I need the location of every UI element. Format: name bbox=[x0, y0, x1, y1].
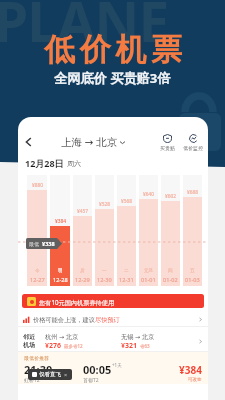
button[interactable]: 仅看直飞 bbox=[28, 369, 72, 380]
staticText: ¥602 bbox=[165, 193, 176, 200]
staticText: ¥688 bbox=[187, 189, 198, 196]
staticText: 仅看直飞 bbox=[39, 371, 61, 378]
staticText: PLANE bbox=[0, 0, 169, 58]
staticText: 买贵赔 bbox=[160, 145, 175, 151]
staticText: ¥880 bbox=[32, 182, 43, 189]
staticText: ¥384 bbox=[179, 363, 202, 377]
staticText: ¥457 bbox=[77, 208, 88, 215]
staticText: 价格可能会上涨，建议 bbox=[33, 316, 95, 324]
staticText: 明 bbox=[58, 268, 63, 274]
staticText: 全网底价 买贵赔3倍 bbox=[54, 69, 171, 87]
staticText: 可改签 bbox=[188, 377, 202, 383]
staticText: 二 bbox=[124, 268, 129, 274]
staticText: 尽快预订 bbox=[95, 316, 120, 324]
button[interactable]: ¥384 bbox=[50, 175, 70, 286]
staticText: × bbox=[64, 371, 68, 378]
button[interactable]: 价格可能会上涨，建议 bbox=[23, 313, 203, 326]
staticText: 21:30 bbox=[24, 362, 53, 377]
staticText: 无锡 → 北京 bbox=[121, 332, 155, 340]
staticText: 四 bbox=[168, 268, 173, 274]
button[interactable]: 上海 → 北京 bbox=[61, 135, 125, 149]
staticText: 01-01 bbox=[141, 276, 156, 284]
staticText: ¥528 bbox=[99, 201, 110, 208]
staticText: 12月28日 bbox=[25, 157, 64, 169]
button[interactable]: ¥457 bbox=[73, 175, 92, 286]
staticText: 首都T2 bbox=[83, 377, 99, 384]
staticText: 您有10元国内机票券待使用 bbox=[39, 298, 115, 306]
staticText: 邻近 bbox=[23, 333, 35, 341]
staticText: ¥384 bbox=[55, 218, 66, 225]
staticText: 省63 bbox=[140, 343, 150, 349]
button[interactable]: ¥880 bbox=[27, 175, 47, 286]
button[interactable]: 最低价推荐 bbox=[18, 352, 208, 384]
staticText: 杭州 → 北京 bbox=[45, 332, 79, 340]
staticText: 12-27 bbox=[30, 276, 45, 284]
button[interactable]: 低价监控 bbox=[183, 134, 203, 151]
staticText: 12-30 bbox=[97, 276, 112, 284]
staticText: +1天 bbox=[112, 362, 122, 368]
staticText: 周六 bbox=[67, 159, 81, 168]
button[interactable]: ¥528 bbox=[95, 175, 114, 286]
button[interactable]: ¥640 bbox=[139, 175, 158, 286]
staticText: 最多省12 bbox=[64, 343, 83, 349]
staticText: 五 bbox=[190, 268, 195, 274]
staticText: 00:05 bbox=[83, 362, 112, 377]
staticText: 后 bbox=[80, 268, 85, 274]
staticText: 机场 bbox=[23, 341, 35, 349]
staticText: 01-03 bbox=[185, 276, 200, 284]
staticText: 今 bbox=[35, 268, 40, 274]
staticText: ¥338 bbox=[42, 240, 55, 247]
staticText: 12-29 bbox=[75, 276, 90, 284]
staticText: ¥321 bbox=[121, 341, 138, 351]
staticText: 最低 bbox=[29, 241, 39, 247]
staticText: 虹桥T2 bbox=[24, 377, 40, 384]
staticText: 低价机票 bbox=[42, 30, 184, 69]
staticText: ¥568 bbox=[121, 198, 132, 205]
staticText: 低价监控 bbox=[183, 145, 203, 151]
button[interactable]: ¥602 bbox=[161, 175, 180, 286]
button[interactable]: 您有10元国内机票券待使用 bbox=[22, 294, 204, 308]
staticText: 最低价推荐 bbox=[24, 355, 49, 361]
staticText: 一 bbox=[102, 268, 107, 274]
staticText: 01-02 bbox=[163, 276, 178, 284]
staticText: 12-31 bbox=[119, 276, 134, 284]
staticText: 上海 → 北京 bbox=[61, 135, 118, 149]
staticText: 元旦 bbox=[144, 268, 154, 274]
button[interactable]: Back bbox=[21, 134, 37, 150]
button[interactable]: ¥688 bbox=[183, 175, 202, 286]
staticText: 12-28 bbox=[53, 276, 68, 284]
staticText: ¥640 bbox=[143, 191, 154, 198]
button[interactable]: 无锡 → 北京 bbox=[121, 332, 198, 351]
staticText: ¥276 bbox=[45, 341, 62, 351]
button[interactable]: 买贵赔 bbox=[160, 134, 175, 151]
button[interactable]: ¥568 bbox=[117, 175, 136, 286]
button[interactable]: 杭州 → 北京 bbox=[45, 332, 121, 351]
